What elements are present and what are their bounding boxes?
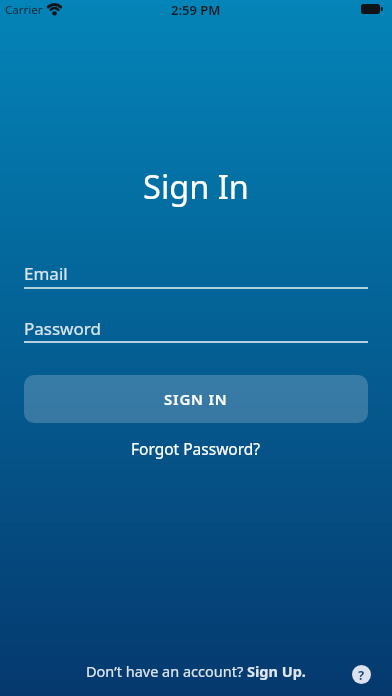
staticText: ? <box>358 666 365 684</box>
button[interactable]: Don’t have an account? Sign Up. <box>86 661 306 681</box>
staticText: Sign In <box>0 164 392 208</box>
staticText: Password <box>24 317 101 340</box>
button[interactable]: Password <box>24 317 368 343</box>
button[interactable]: Forgot Password? <box>131 438 261 459</box>
staticText: Don’t have an account? Sign Up. <box>86 661 306 681</box>
staticText: SIGN IN <box>164 389 228 409</box>
staticText: Email <box>24 262 68 285</box>
button[interactable]: Email <box>24 262 368 289</box>
staticText: 2:59 PM <box>171 1 221 19</box>
button[interactable]: ? <box>352 665 371 684</box>
staticText: Forgot Password? <box>131 438 261 459</box>
staticText: Carrier <box>5 2 43 18</box>
button[interactable]: SIGN IN <box>24 375 368 423</box>
